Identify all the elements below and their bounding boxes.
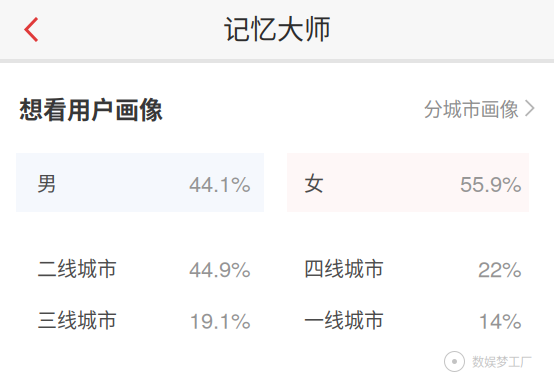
staticText: 44.9% [189,252,251,283]
staticText: 55.9% [460,167,522,198]
staticText: 分城市画像 [423,94,518,122]
staticText: 想看用户画像 [19,91,163,125]
staticText: 44.1% [189,167,251,198]
staticText: 记忆大师 [223,8,331,47]
staticText: 19.1% [189,303,251,335]
button[interactable]: 分城市画像 [423,94,535,122]
staticText: 男 [37,168,57,197]
staticText: 一线城市 [304,305,384,334]
button[interactable]: Back [0,4,62,54]
staticText: 22% [478,252,522,283]
staticText: 四线城市 [304,253,384,282]
staticText: 女 [304,168,324,197]
staticText: 三线城市 [37,305,117,334]
staticText: 数娱梦工厂 [472,353,532,370]
staticText: 14% [478,303,522,335]
staticText: 二线城市 [37,253,117,282]
